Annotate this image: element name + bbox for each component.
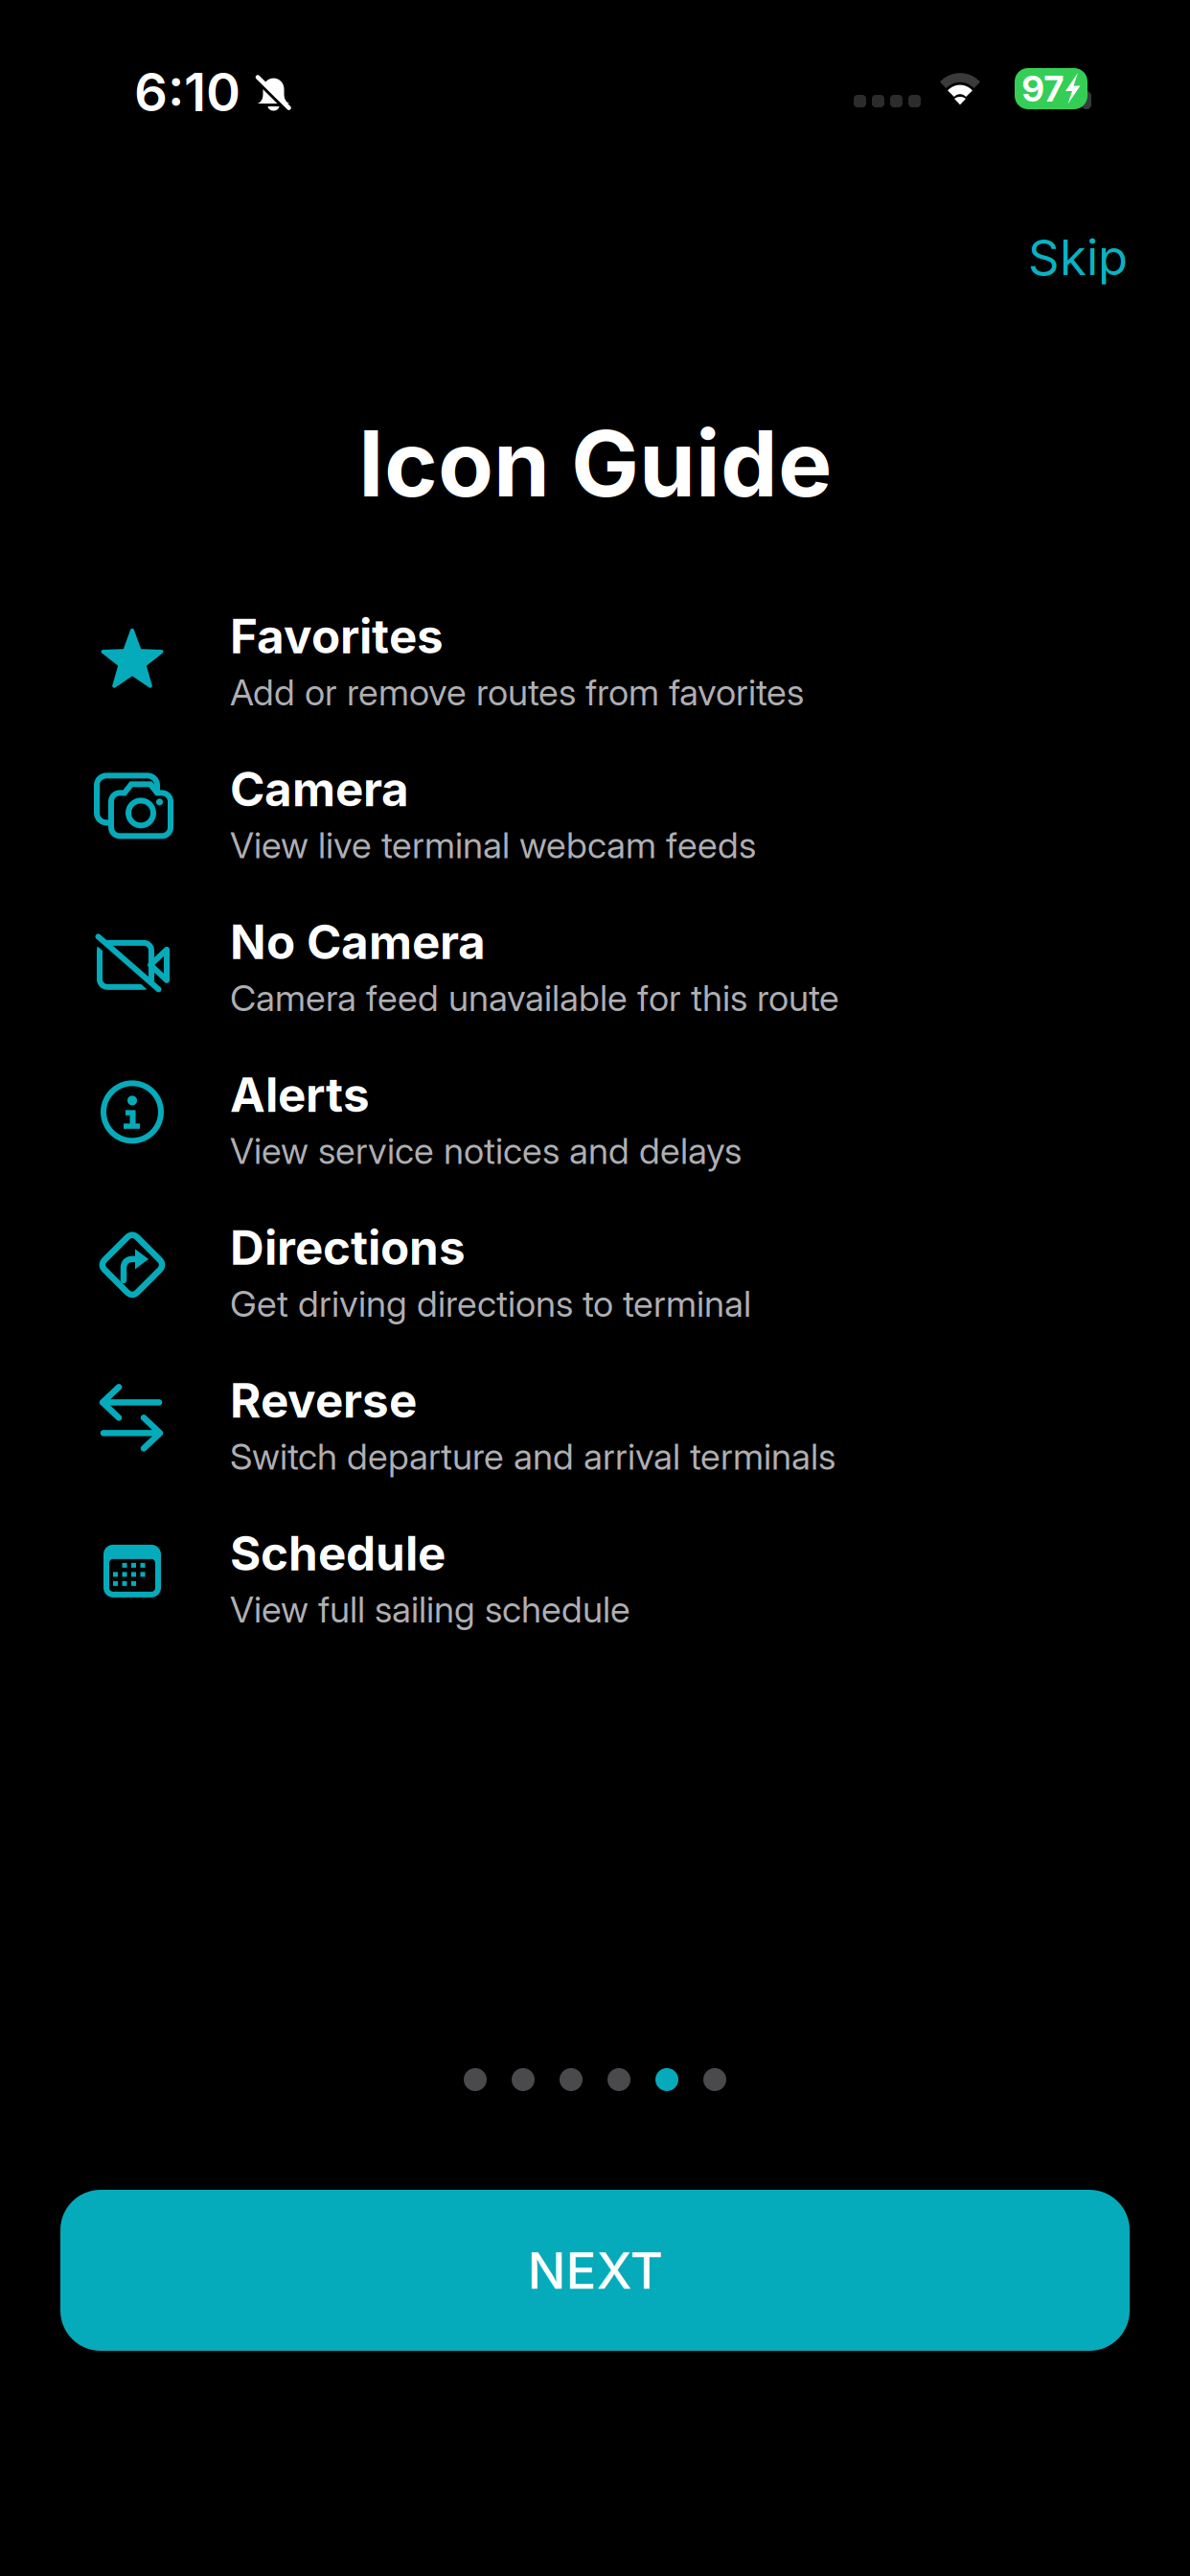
staticText: View full sailing schedule [230,1587,630,1631]
staticText: Schedule [230,1525,446,1582]
staticText: Directions [230,1219,466,1276]
staticText: Switch departure and arrival terminals [230,1435,835,1478]
staticText: Reverse [230,1372,417,1429]
staticText: View service notices and delays [230,1129,742,1173]
staticText: Get driving directions to terminal [230,1282,751,1326]
button[interactable]: NEXT [60,2190,1130,2351]
staticText: NEXT [527,2240,663,2301]
staticText: Skip [1028,228,1128,287]
staticText: 6:10 [134,60,240,124]
staticText: Camera [230,760,409,817]
staticText: Alerts [230,1066,370,1123]
staticText: Add or remove routes from favorites [230,670,804,714]
staticText: Icon Guide [358,409,832,518]
staticText: No Camera [230,913,486,970]
staticText: 97 [1022,67,1064,110]
staticText: Camera feed unavailable for this route [230,976,839,1020]
staticText: Favorites [230,607,444,665]
staticText: View live terminal webcam feeds [230,823,756,867]
button[interactable]: Skip [1011,213,1145,302]
